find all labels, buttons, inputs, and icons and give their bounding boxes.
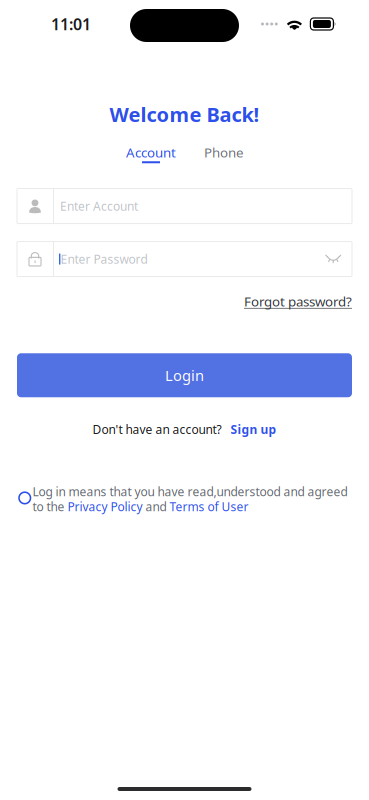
staticText: Account — [126, 144, 176, 161]
button[interactable]: Show password — [325, 255, 341, 263]
staticText: Enter Account — [60, 198, 138, 214]
staticText: Sign up — [230, 421, 276, 437]
staticText: Welcome Back! — [109, 101, 259, 128]
staticText: Login — [165, 365, 204, 385]
staticText: to the — [32, 499, 67, 515]
button[interactable]: Phone — [204, 144, 244, 161]
button[interactable]: Forgot password? — [244, 293, 352, 310]
staticText: Privacy Policy — [67, 499, 142, 515]
button[interactable]: Sign up — [230, 421, 276, 437]
button[interactable]: Account — [125, 144, 177, 163]
staticText: Terms of User — [169, 499, 248, 515]
staticText: and — [142, 499, 169, 515]
button[interactable]: Terms of User — [169, 499, 248, 515]
staticText: 11:01 — [51, 13, 91, 35]
staticText: Forgot password? — [244, 293, 352, 310]
button[interactable]: Accept terms — [19, 492, 30, 504]
button[interactable]: Privacy Policy — [67, 499, 142, 515]
staticText: Phone — [204, 144, 244, 161]
staticText: Enter Password — [60, 251, 147, 267]
staticText: Log in means that you have read,understo… — [32, 484, 347, 500]
button[interactable]: Login — [17, 353, 352, 397]
staticText: Don't have an account? — [92, 421, 221, 437]
